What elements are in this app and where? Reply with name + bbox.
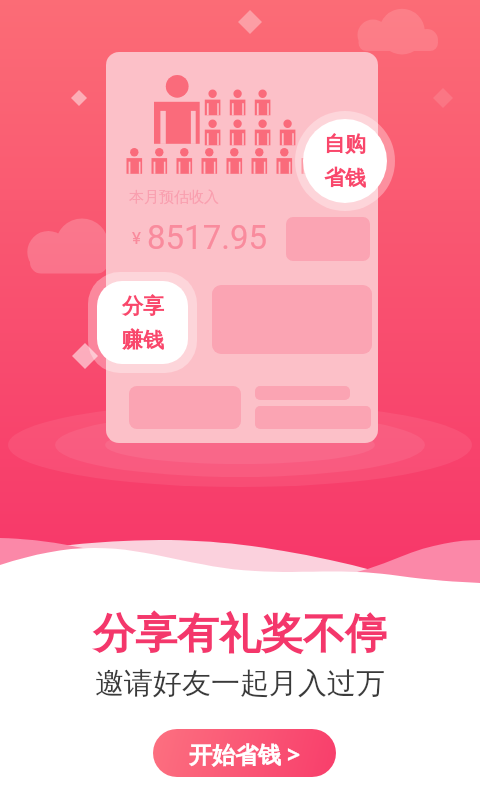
- staticText: ¥: [132, 228, 141, 248]
- staticText: 分享有礼奖不停: [93, 608, 387, 661]
- staticText: 邀请好友一起月入过万: [95, 665, 385, 702]
- staticText: 自购: [324, 131, 366, 157]
- button[interactable]: 自购: [303, 119, 387, 203]
- staticText: 省钱: [324, 165, 366, 191]
- staticText: 赚钱: [122, 327, 164, 353]
- staticText: 8517.95: [147, 218, 267, 257]
- staticText: 分享: [122, 293, 164, 319]
- staticText: 开始省钱 >: [189, 738, 301, 769]
- button[interactable]: 开始省钱 >: [153, 729, 336, 777]
- button[interactable]: 分享: [97, 281, 188, 364]
- staticText: 本月预估收入: [129, 188, 219, 207]
